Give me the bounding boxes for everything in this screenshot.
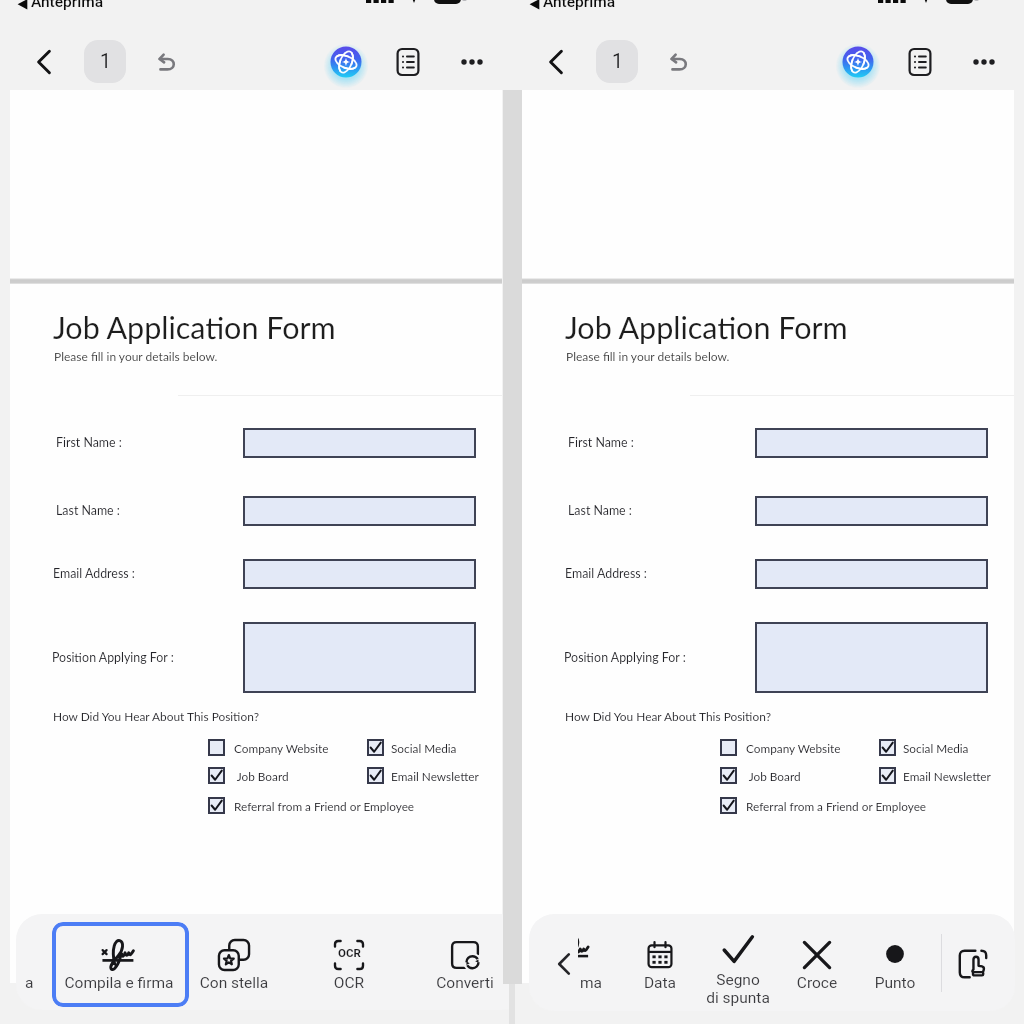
staticText: How Did You Hear About This Position? [53, 709, 259, 723]
button[interactable]: Email Newsletter [879, 764, 991, 787]
staticText: a [25, 974, 34, 992]
staticText: OCR [338, 946, 361, 959]
staticText: Position Applying For : [564, 650, 686, 665]
button[interactable] [755, 622, 988, 693]
staticText: Job Application Form [565, 309, 848, 346]
staticText: Last Name : [56, 503, 120, 518]
button[interactable]: Company Website [720, 736, 841, 759]
button[interactable] [755, 559, 988, 589]
button[interactable]: Punto [859, 930, 931, 1002]
button[interactable] [755, 428, 988, 458]
staticText: Punto [825, 974, 965, 992]
button[interactable]: 1 [596, 40, 638, 83]
button[interactable]: Job Board [208, 764, 289, 787]
button[interactable]: Undo [659, 42, 699, 82]
button[interactable]: Firma [578, 934, 606, 968]
button[interactable]: Social Media [879, 736, 969, 759]
staticText: ma [570, 974, 612, 992]
button[interactable]: Croce [781, 930, 853, 1002]
staticText: Last Name : [568, 503, 632, 518]
staticText: Social Media [391, 741, 457, 755]
button[interactable] [243, 559, 476, 589]
button[interactable]: More options [964, 42, 1004, 82]
staticText: 1 [612, 50, 623, 73]
button[interactable]: Referral from a Friend or Employee [208, 794, 415, 817]
button[interactable]: Back [23, 41, 65, 83]
staticText: Company Website [234, 741, 329, 755]
staticText: Data [590, 974, 730, 992]
button[interactable] [243, 622, 476, 693]
button[interactable]: More options [452, 42, 492, 82]
staticText: How Did You Hear About This Position? [565, 709, 771, 723]
button[interactable]: Converti [410, 930, 520, 1002]
button[interactable] [243, 428, 476, 458]
staticText: Social Media [903, 741, 969, 755]
staticText: Anteprima [31, 0, 104, 11]
staticText: Company Website [746, 741, 841, 755]
button[interactable]: Table of contents [388, 42, 428, 82]
button[interactable] [52, 922, 189, 1007]
staticText: Converti [395, 974, 535, 992]
staticText: Anteprima [543, 0, 616, 11]
staticText: Please fill in your details below. [54, 349, 218, 363]
button[interactable]: Data [624, 930, 696, 1002]
staticText: Email Newsletter [391, 769, 479, 783]
staticText: First Name : [568, 435, 634, 450]
button[interactable]: Segno di spunta [693, 930, 783, 1002]
button[interactable]: Undo [147, 42, 187, 82]
button[interactable]: Company Website [208, 736, 329, 759]
button[interactable]: Email Newsletter [367, 764, 479, 787]
button[interactable]: Referral from a Friend or Employee [720, 794, 927, 817]
staticText: Job Board [743, 769, 801, 783]
button[interactable]: 1 [84, 40, 126, 83]
staticText: OCR [279, 974, 419, 992]
button[interactable] [755, 496, 988, 526]
staticText: Email Newsletter [903, 769, 991, 783]
staticText: Please fill in your details below. [566, 349, 730, 363]
staticText: 1 [100, 50, 111, 73]
staticText: Con stella [164, 974, 304, 992]
staticText: Croce [747, 974, 887, 992]
button[interactable]: Select tool [947, 938, 999, 990]
staticText: First Name : [56, 435, 122, 450]
button[interactable]: AI assistant [324, 40, 368, 84]
staticText: Position Applying For : [52, 650, 174, 665]
button[interactable]: AI assistant [836, 40, 880, 84]
staticText: Job Application Form [53, 309, 336, 346]
button[interactable] [243, 496, 476, 526]
button[interactable]: Previous tools [546, 940, 582, 988]
staticText: Job Board [231, 769, 289, 783]
staticText: Email Address : [53, 566, 135, 581]
staticText: Segno di spunta [668, 971, 808, 1007]
button[interactable]: Job Board [720, 764, 801, 787]
button[interactable]: OCR [304, 930, 394, 1002]
button[interactable]: Con stella [179, 930, 289, 1002]
staticText: Email Address : [565, 566, 647, 581]
button[interactable]: Table of contents [900, 42, 940, 82]
button[interactable]: Back [535, 41, 577, 83]
staticText: Referral from a Friend or Employee [234, 799, 415, 813]
staticText: Referral from a Friend or Employee [746, 799, 927, 813]
button[interactable]: Social Media [367, 736, 457, 759]
button[interactable]: Compila e firma [53, 930, 185, 1002]
staticText: Compila e firma [49, 974, 189, 992]
